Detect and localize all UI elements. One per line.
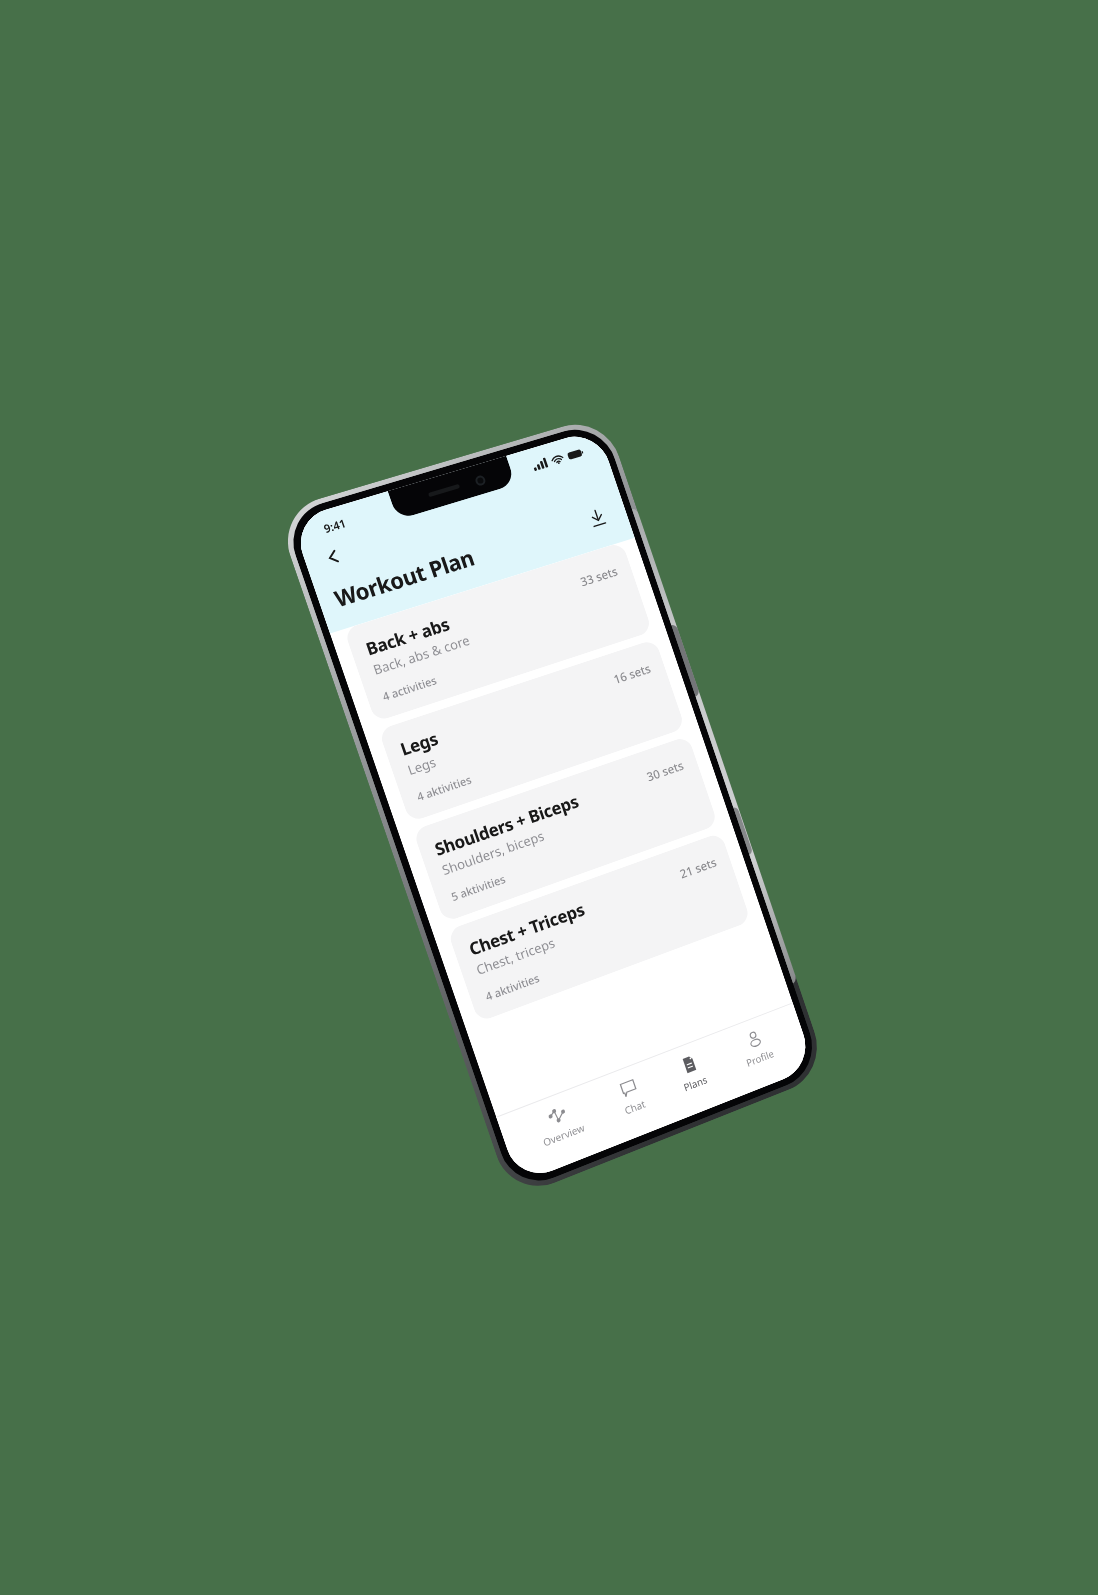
staticText: Profile: [744, 1046, 776, 1070]
staticText: 16 sets: [611, 660, 652, 687]
staticText: Legs: [405, 752, 439, 779]
button[interactable]: Legs: [378, 639, 685, 822]
staticText: 4 activities: [380, 672, 439, 704]
staticText: Overview: [541, 1120, 587, 1149]
staticText: 4 aktivities: [415, 771, 474, 804]
staticText: Chest, triceps: [474, 933, 557, 979]
button[interactable]: Download: [581, 502, 613, 533]
staticText: 30 sets: [644, 757, 685, 784]
button[interactable]: Profile: [730, 1021, 784, 1074]
staticText: 4 aktivities: [483, 970, 542, 1004]
button[interactable]: Chest + Triceps: [447, 832, 751, 1022]
button[interactable]: Shoulders + Biceps: [413, 735, 718, 923]
staticText: Back, abs & core: [371, 631, 473, 679]
staticText: Chest + Triceps: [466, 897, 587, 961]
staticText: Workout Plan: [330, 541, 478, 613]
staticText: Plans: [682, 1072, 710, 1094]
button[interactable]: Back: [318, 543, 347, 571]
staticText: Shoulders, biceps: [439, 826, 547, 879]
staticText: Back + abs: [363, 612, 452, 660]
button[interactable]: Chat: [608, 1071, 655, 1122]
staticText: 21 sets: [678, 854, 718, 881]
staticText: 33 sets: [578, 563, 619, 589]
button[interactable]: Overview: [526, 1094, 595, 1154]
button[interactable]: Back + abs: [344, 542, 653, 722]
staticText: Shoulders + Biceps: [432, 789, 581, 861]
staticText: 9:41: [322, 515, 348, 536]
staticText: 5 aktivities: [449, 871, 508, 904]
button[interactable]: Plans: [667, 1047, 717, 1099]
staticText: Chat: [623, 1096, 647, 1117]
staticText: Legs: [397, 727, 441, 761]
